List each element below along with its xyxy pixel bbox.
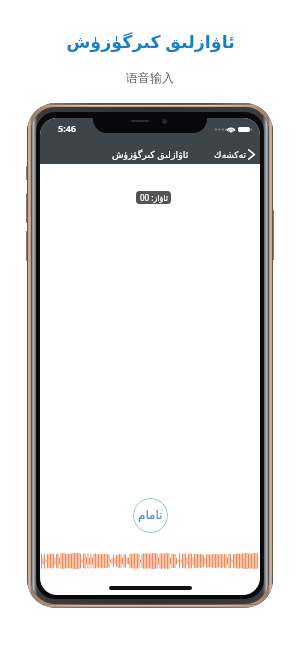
button[interactable]: تەكشەك [209,145,260,164]
other: Back [248,149,255,160]
staticText: ئاۋاز: 00 [140,192,168,203]
staticText: ئاۋازلىق كىرگۈزۈش [66,29,235,53]
staticText: 5:46 [58,122,76,134]
staticText: 语音输入 [126,70,174,85]
staticText: ئاۋازلىق كىرگۈزۈش [112,148,189,161]
staticText: تەكشەك [214,150,246,160]
button[interactable]: تامام [133,498,168,533]
staticText: تامام [138,508,163,522]
